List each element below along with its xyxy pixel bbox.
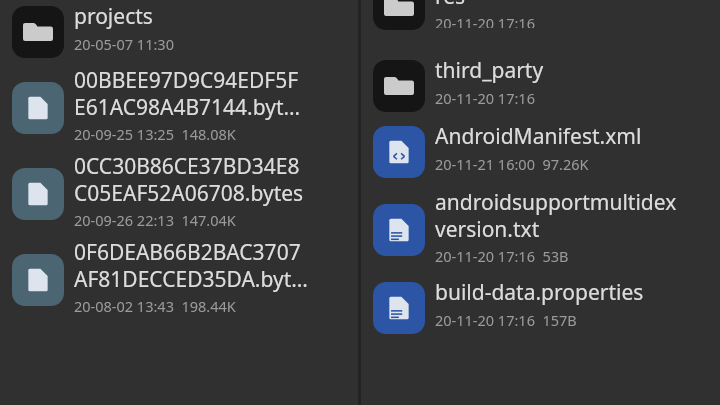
other: File xyxy=(24,266,52,294)
staticText: 0CC30B86CE37BD34E8 C05EAF52A06708.bytes xyxy=(74,152,304,207)
button[interactable]: File xyxy=(0,238,358,316)
staticText: 20-09-25 13:25 148.08K xyxy=(74,124,236,144)
staticText: build-data.properties xyxy=(435,278,644,307)
other: XML file xyxy=(385,138,413,166)
staticText: androidsupportmultidex version.txt xyxy=(435,188,677,243)
other: Folder xyxy=(384,0,414,22)
staticText: 20-11-20 17:16 157B xyxy=(435,310,577,330)
button[interactable]: Folder xyxy=(0,2,358,58)
staticText: 0F6DEAB66B2BAC3707 AF81DECCED35DA.byt… xyxy=(74,238,308,293)
button[interactable]: Folder xyxy=(361,0,720,46)
staticText: projects xyxy=(74,2,153,31)
button[interactable]: XML file xyxy=(361,122,720,178)
staticText: res xyxy=(435,0,466,11)
staticText: 20-09-26 22:13 147.04K xyxy=(74,210,236,230)
staticText: 20-05-07 11:30 xyxy=(74,34,174,54)
staticText: AndroidManifest.xml xyxy=(435,122,642,151)
staticText: 20-08-02 13:43 198.44K xyxy=(74,296,236,316)
staticText: 20-11-20 17:16 xyxy=(435,13,535,28)
button[interactable]: File xyxy=(361,188,720,266)
other: File xyxy=(24,94,52,122)
staticText: third_party xyxy=(435,56,544,85)
other: File xyxy=(24,180,52,208)
other: File xyxy=(385,216,413,244)
button[interactable]: Folder xyxy=(361,56,720,112)
staticText: 20-11-21 16:00 97.26K xyxy=(435,154,589,174)
staticText: 20-11-20 17:16 xyxy=(435,88,535,108)
staticText: 20-11-20 17:16 53B xyxy=(435,246,569,266)
button[interactable]: File xyxy=(0,152,358,230)
other: Folder xyxy=(384,71,414,101)
other: Folder xyxy=(23,17,53,47)
button[interactable]: File xyxy=(0,66,358,144)
button[interactable]: File xyxy=(361,278,720,334)
other: File xyxy=(385,294,413,322)
staticText: 00BBEE97D9C94EDF5F E61AC98A4B7144.byt… xyxy=(74,66,301,121)
